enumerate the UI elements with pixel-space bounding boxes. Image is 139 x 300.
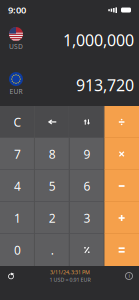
staticText: i [128, 272, 129, 279]
button[interactable]: USD [0, 20, 139, 62]
staticText: 3/11/24, 3:31 PM [50, 269, 90, 276]
button[interactable] [69, 106, 104, 138]
button[interactable]: EUR [0, 62, 139, 104]
staticText: EUR [9, 87, 22, 96]
staticText: 6 [83, 178, 90, 194]
staticText: 0 [14, 242, 21, 258]
staticText: 5 [49, 178, 56, 194]
button[interactable] [104, 138, 139, 170]
staticText: 8 [49, 146, 56, 162]
button[interactable]: 3 [69, 202, 104, 234]
staticText: C [13, 114, 21, 130]
staticText: 4 [14, 178, 21, 194]
button[interactable]: 9 [69, 138, 104, 170]
button[interactable] [104, 106, 139, 138]
button[interactable]: 0 [0, 234, 35, 266]
button[interactable]: 6 [69, 170, 104, 202]
button[interactable]: 8 [35, 138, 70, 170]
staticText: 1 USD = 0.91 EUR [49, 276, 90, 283]
button[interactable] [104, 170, 139, 202]
staticText: . [51, 242, 54, 258]
staticText: 2 [49, 210, 56, 226]
staticText: 1 [14, 210, 21, 226]
button[interactable]: 2 [35, 202, 70, 234]
button[interactable]: C [0, 106, 35, 138]
button[interactable] [104, 202, 139, 234]
staticText: 9 [83, 146, 90, 162]
button[interactable]: Refresh rates [1, 266, 21, 286]
button[interactable]: 4 [0, 170, 35, 202]
staticText: 3 [83, 210, 90, 226]
button[interactable] [69, 234, 104, 266]
button[interactable]: . [35, 234, 70, 266]
button[interactable] [104, 234, 139, 266]
button[interactable]: 7 [0, 138, 35, 170]
button[interactable]: Info [119, 266, 139, 286]
button[interactable] [35, 106, 70, 138]
staticText: USD [9, 42, 23, 51]
staticText: 9:00 [8, 4, 26, 16]
button[interactable]: 1 [0, 202, 35, 234]
staticText: 7 [14, 146, 21, 162]
staticText: 1,000,000 [63, 29, 134, 51]
staticText: 913,720 [76, 74, 134, 96]
button[interactable]: 5 [35, 170, 70, 202]
